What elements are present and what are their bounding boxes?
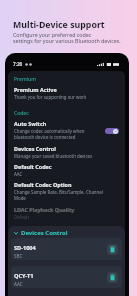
staticText: Premium bbox=[14, 76, 36, 83]
staticText: Codec bbox=[14, 110, 29, 117]
staticText: Change Sample Rate, Bits/Sample, Channel… bbox=[14, 189, 103, 202]
staticText: Auto Switch bbox=[14, 120, 47, 127]
staticText: Manage your saved bluetooth devices bbox=[14, 153, 93, 159]
button[interactable]: Devices Control bbox=[8, 228, 125, 238]
staticText: Change codec automatically when bluetoot… bbox=[14, 128, 85, 141]
button[interactable]: Delete device bbox=[107, 244, 118, 255]
staticText: LDAC Playback Quality bbox=[14, 206, 75, 213]
button[interactable]: Premium Active bbox=[14, 84, 119, 102]
staticText: Multi-Device support bbox=[13, 19, 105, 31]
staticText: Devices Control bbox=[14, 145, 56, 152]
staticText: 7:26 bbox=[13, 61, 23, 67]
staticText: Configure your preferred codec settings … bbox=[13, 31, 121, 45]
button[interactable]: SD-1004 bbox=[11, 238, 122, 260]
button[interactable]: Auto Switch bbox=[14, 118, 119, 143]
button[interactable]: Delete device bbox=[107, 272, 118, 283]
staticText: AAC bbox=[14, 281, 23, 287]
staticText: QCY-T1 bbox=[14, 272, 34, 280]
staticText: Default Codec Option bbox=[14, 181, 72, 188]
staticText: SBC bbox=[14, 253, 23, 259]
button[interactable]: QCY-T1 bbox=[11, 266, 122, 288]
staticText: Default Codec bbox=[14, 163, 52, 170]
staticText: Thank you for supporting our work bbox=[14, 94, 87, 100]
staticText: AAC bbox=[14, 171, 23, 177]
staticText: SD-1004 bbox=[14, 244, 36, 252]
staticText: Default bbox=[14, 214, 30, 220]
button[interactable]: Default Codec Option bbox=[14, 179, 119, 204]
staticText: Devices Control bbox=[21, 229, 68, 237]
button[interactable]: Devices Control bbox=[14, 143, 119, 161]
staticText: Premium Active bbox=[14, 86, 57, 93]
button[interactable]: LDAC Playback Quality bbox=[14, 204, 119, 222]
button[interactable]: Default Codec bbox=[14, 161, 119, 179]
